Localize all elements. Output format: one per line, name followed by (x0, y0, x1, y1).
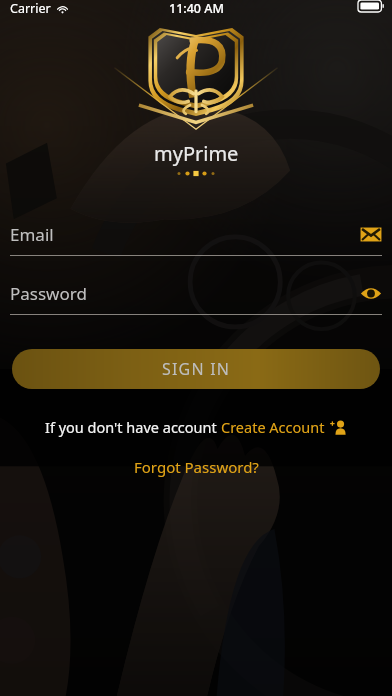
staticText: SIGN IN (162, 358, 231, 380)
staticText: myPrime (154, 140, 239, 167)
staticText: If you don't have account (45, 417, 221, 437)
staticText: Create Account (221, 417, 325, 437)
button[interactable]: SIGN IN (12, 349, 380, 389)
staticText: Email (10, 223, 54, 246)
staticText: 11:40 AM (169, 0, 224, 17)
other: Create account (330, 419, 347, 436)
button[interactable]: Email (360, 226, 382, 243)
button[interactable]: Create Account (221, 417, 347, 437)
button[interactable]: Password (10, 278, 382, 315)
button[interactable]: Email (10, 219, 382, 256)
button[interactable]: Show password (360, 285, 382, 302)
staticText: Carrier (10, 0, 51, 17)
staticText: Forgot Password? (134, 457, 259, 477)
button[interactable]: Forgot Password? (124, 454, 269, 480)
staticText: Password (10, 282, 87, 305)
